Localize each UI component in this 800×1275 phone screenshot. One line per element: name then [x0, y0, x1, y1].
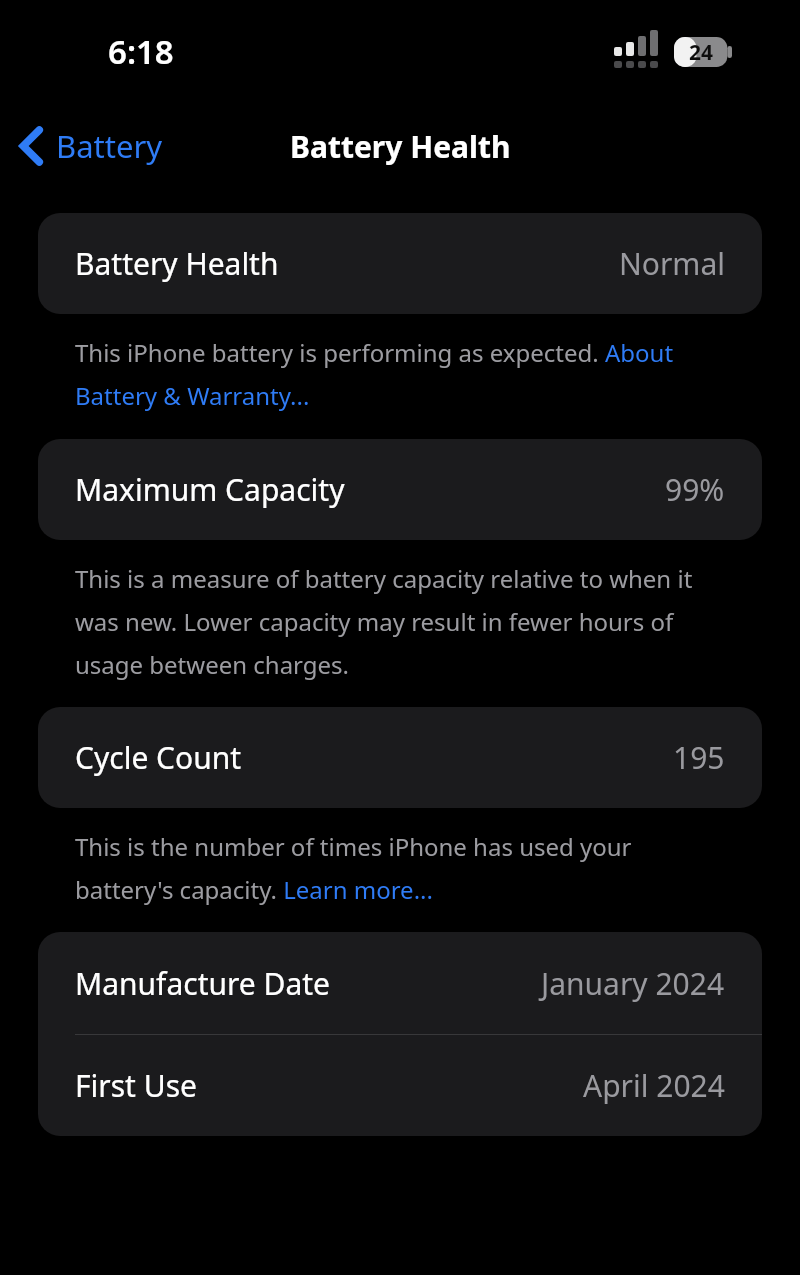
staticText: Cycle Count [75, 737, 242, 778]
staticText: Manufacture Date [75, 963, 331, 1004]
staticText: Normal [619, 243, 725, 284]
staticText: This is the number of times iPhone has u… [75, 830, 722, 906]
staticText: Battery Health [290, 126, 511, 167]
staticText: 99% [665, 469, 725, 510]
staticText: 6:18 [108, 29, 174, 74]
staticText: Battery Health [75, 243, 279, 284]
button[interactable]: Cycle Count [38, 707, 762, 808]
button[interactable]: Battery Health [38, 213, 762, 314]
staticText: April 2024 [583, 1065, 725, 1106]
staticText: This is a measure of battery capacity re… [75, 562, 722, 681]
staticText: Battery [56, 125, 163, 167]
button[interactable]: Maximum Capacity [38, 439, 762, 540]
staticText: This iPhone battery is performing as exp… [75, 336, 722, 412]
staticText: Maximum Capacity [75, 469, 345, 510]
staticText: 195 [673, 737, 725, 778]
button[interactable]: First Use [38, 1035, 762, 1136]
button[interactable]: Battery [0, 119, 177, 173]
button[interactable]: Manufacture Date [38, 932, 762, 1035]
staticText: January 2024 [541, 963, 725, 1004]
staticText: First Use [75, 1065, 197, 1106]
staticText: 24 [689, 38, 714, 67]
